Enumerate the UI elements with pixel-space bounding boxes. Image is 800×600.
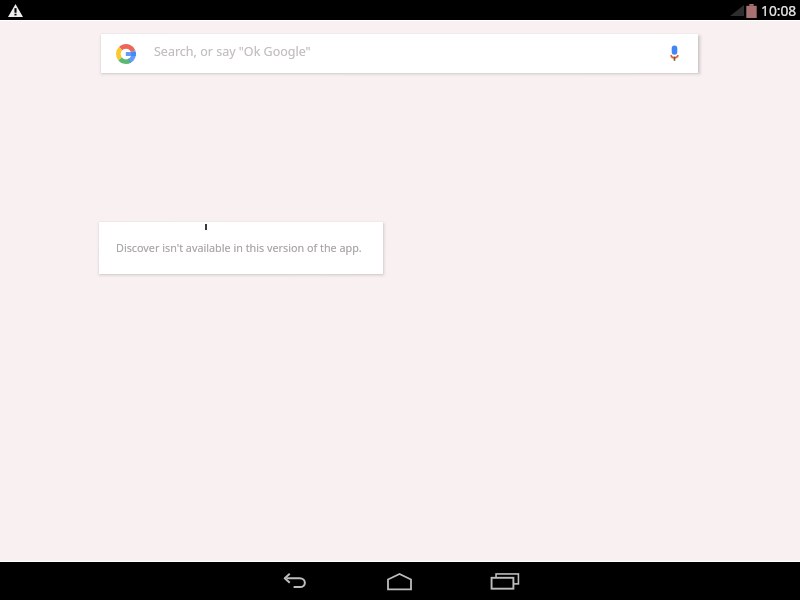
button[interactable]: Search, or say "Ok Google" (101, 34, 698, 73)
button[interactable]: Voice search (670, 45, 679, 61)
button[interactable]: Back (256, 562, 336, 600)
button[interactable]: Discover isn't available in this version… (99, 222, 383, 274)
button[interactable]: Recent apps (465, 562, 545, 600)
staticText: Discover isn't available in this version… (116, 240, 362, 255)
staticText: Search, or say "Ok Google" (154, 43, 311, 60)
button[interactable]: Home (359, 562, 439, 600)
staticText: 10:08 (761, 1, 797, 20)
